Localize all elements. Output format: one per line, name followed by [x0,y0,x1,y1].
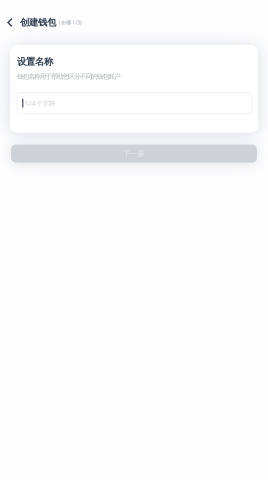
staticText: 设置名称 [17,56,53,67]
button[interactable]: 返回 [5,12,15,32]
staticText: 1-14 个字符 [24,99,56,108]
staticText: 创建钱包 [20,17,56,28]
staticText: 钱包名称用于帮助您区分不同的钱包账户 [17,72,121,81]
staticText: (步骤 1/3) [59,19,82,26]
button[interactable]: 下一步 [11,145,257,163]
staticText: 下一步 [123,150,144,158]
